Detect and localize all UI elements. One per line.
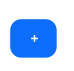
button[interactable]: Add bbox=[10, 19, 57, 58]
